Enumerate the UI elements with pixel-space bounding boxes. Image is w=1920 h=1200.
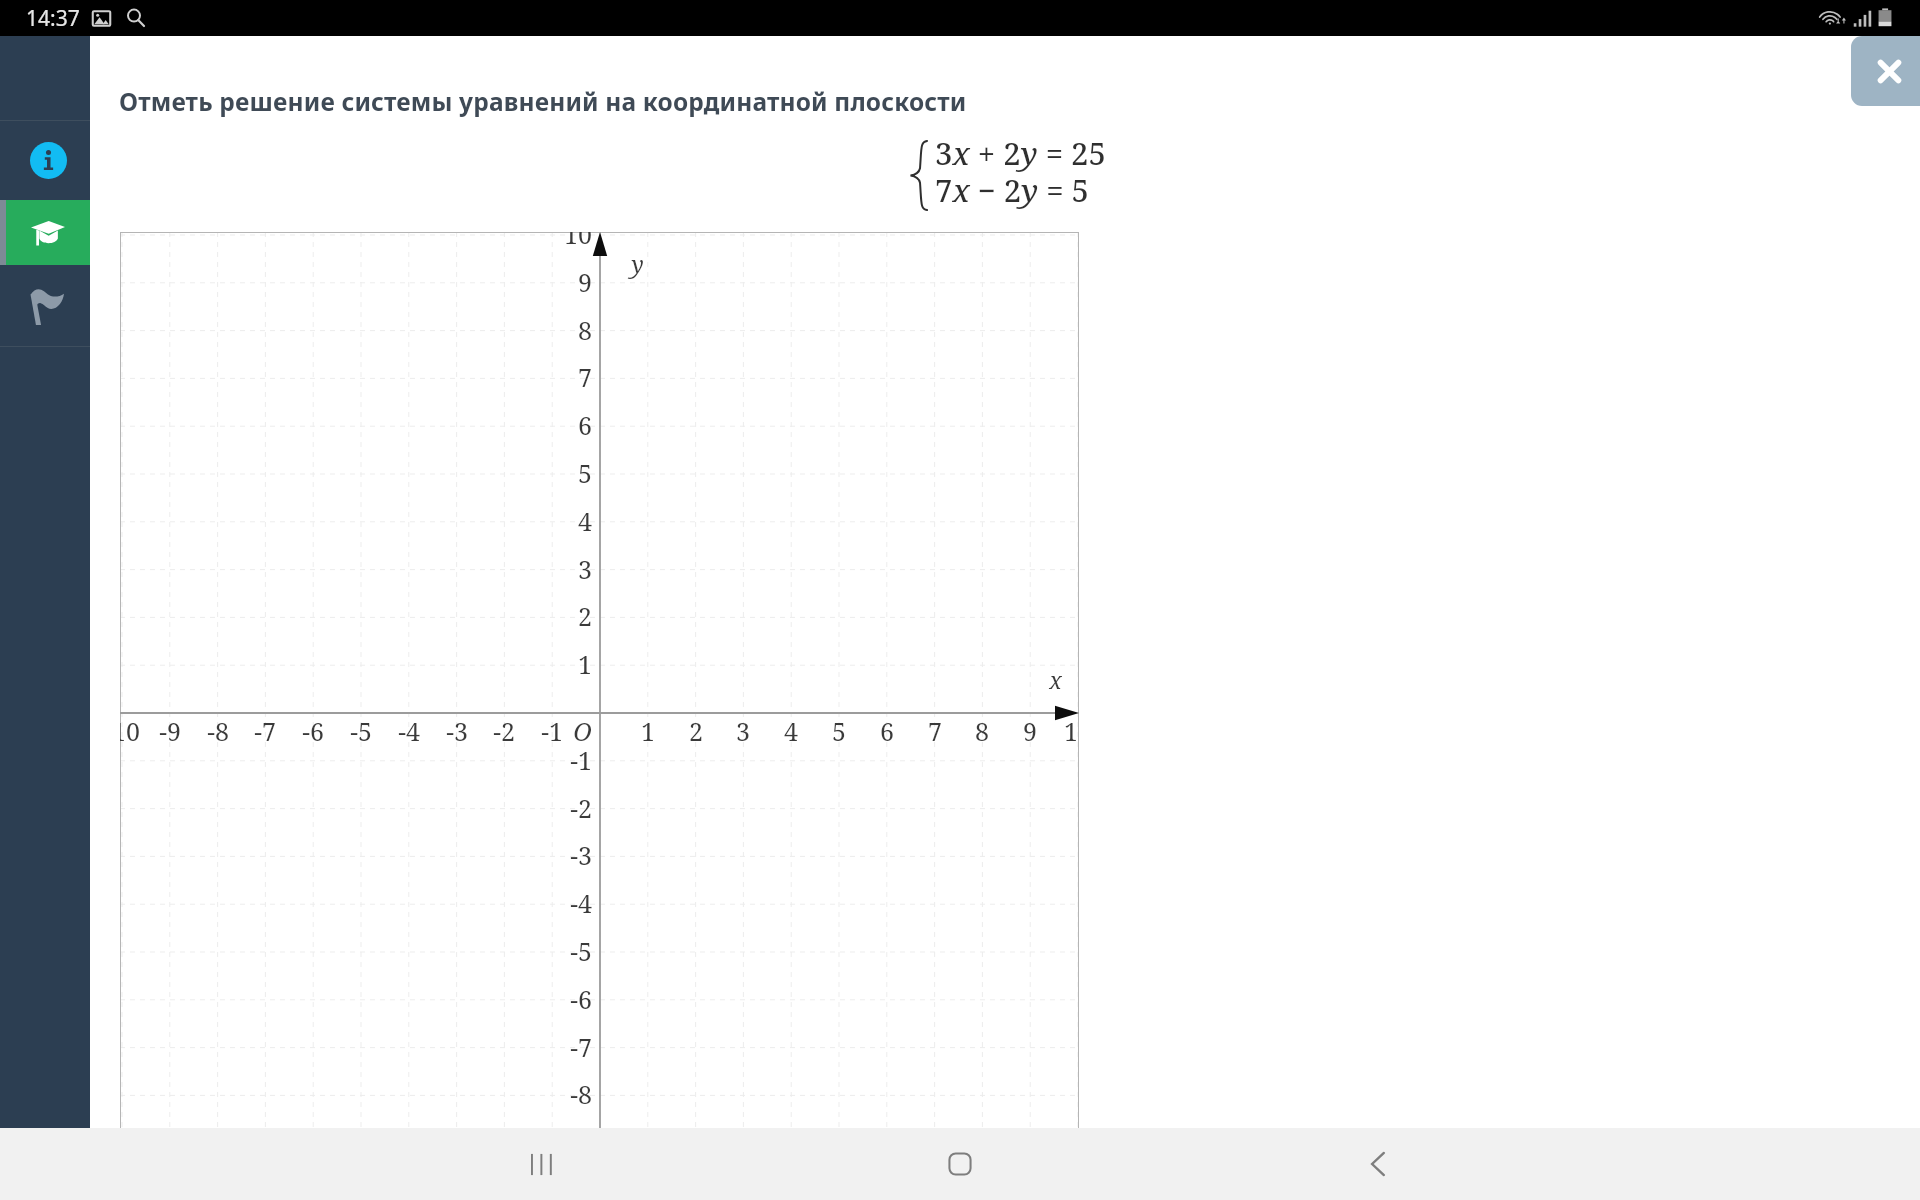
staticText: 8: [578, 313, 592, 347]
staticText: -3: [446, 714, 468, 748]
staticText: 1: [641, 714, 655, 748]
staticText: -1: [570, 743, 592, 777]
staticText: -6: [570, 982, 592, 1016]
staticText: 6: [880, 714, 894, 748]
staticText: -3: [570, 838, 592, 872]
staticText: -2: [570, 791, 592, 825]
button[interactable]: Back: [1318, 1128, 1438, 1200]
button[interactable]: Information: [0, 121, 90, 200]
staticText: 2: [689, 714, 703, 748]
staticText: 7: [928, 714, 942, 748]
staticText: 9: [578, 265, 592, 299]
button[interactable]: Close: [1851, 36, 1920, 106]
staticText: -2: [493, 714, 515, 748]
staticText: 10: [564, 232, 592, 251]
staticText: 4: [784, 714, 798, 748]
staticText: 3: [736, 714, 750, 748]
staticText: -10: [120, 714, 140, 748]
staticText: x: [1049, 664, 1062, 695]
staticText: -5: [570, 934, 592, 968]
staticText: Отметь решение системы уравнений на коор…: [119, 85, 967, 118]
staticText: 8: [975, 714, 989, 748]
staticText: 9: [1023, 714, 1037, 748]
staticText: -6: [302, 714, 324, 748]
staticText: O: [573, 714, 592, 748]
staticText: 5: [578, 456, 592, 490]
staticText: 5: [832, 714, 846, 748]
staticText: y: [631, 248, 644, 279]
staticText: 10: [1064, 714, 1079, 748]
staticText: -7: [254, 714, 276, 748]
staticText: -8: [570, 1077, 592, 1111]
staticText: 7x − 2y = 5: [935, 169, 1089, 211]
button[interactable]: Recents: [481, 1128, 601, 1200]
staticText: 3: [578, 552, 592, 586]
staticText: 7: [578, 360, 592, 394]
staticText: -7: [570, 1030, 592, 1064]
staticText: 6: [578, 408, 592, 442]
staticText: -1: [541, 714, 563, 748]
staticText: 4: [578, 504, 592, 538]
staticText: 14:37: [26, 4, 80, 33]
staticText: -4: [398, 714, 420, 748]
staticText: 1: [578, 647, 592, 681]
staticText: 2: [578, 599, 592, 633]
staticText: -5: [350, 714, 372, 748]
button[interactable]: Lessons: [0, 200, 90, 265]
staticText: -9: [159, 714, 181, 748]
staticText: -4: [570, 886, 592, 920]
button[interactable]: Report a problem: [0, 265, 90, 346]
button[interactable]: Home: [900, 1128, 1020, 1200]
staticText: 3x + 2y = 25: [935, 132, 1106, 174]
staticText: -8: [207, 714, 229, 748]
